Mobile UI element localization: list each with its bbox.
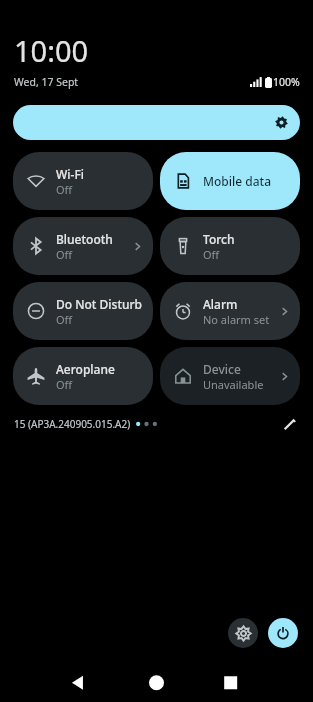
button[interactable]: Wi-Fi [13, 152, 153, 210]
button[interactable]: Edit tiles [278, 413, 300, 435]
button[interactable]: Mobile data [160, 152, 300, 210]
button[interactable]: Settings [228, 618, 258, 648]
staticText: Alarm [203, 296, 238, 312]
button[interactable]: Alarm [160, 282, 300, 340]
staticText: Bluetooth [56, 231, 113, 247]
staticText: Unavailable [203, 377, 264, 392]
staticText: No alarm set [203, 312, 270, 327]
button[interactable]: Brightness [13, 105, 300, 140]
staticText: Aeroplane mode [56, 361, 146, 377]
staticText: Wed, 17 Sept [14, 75, 79, 89]
staticText: Off [56, 247, 73, 262]
staticText: 15 (AP3A.240905.015.A2) [14, 417, 131, 431]
staticText: Mobile data [203, 173, 272, 189]
button[interactable]: Device controls [160, 347, 300, 405]
button[interactable]: Power [268, 618, 298, 648]
staticText: Wi-Fi [56, 166, 84, 182]
staticText: Device controls [203, 361, 278, 377]
staticText: Off [56, 377, 73, 392]
staticText: Do Not Disturb [56, 296, 143, 312]
staticText: Off [56, 312, 73, 327]
staticText: Off [203, 247, 220, 262]
staticText: Torch [203, 231, 235, 247]
staticText: 100% [273, 75, 300, 89]
button[interactable]: Do Not Disturb [13, 282, 153, 340]
staticText: Off [56, 182, 73, 197]
button[interactable]: Aeroplane mode [13, 347, 153, 405]
button[interactable]: Torch [160, 217, 300, 275]
button[interactable]: Bluetooth [13, 217, 153, 275]
staticText: 10:00 [14, 31, 89, 70]
